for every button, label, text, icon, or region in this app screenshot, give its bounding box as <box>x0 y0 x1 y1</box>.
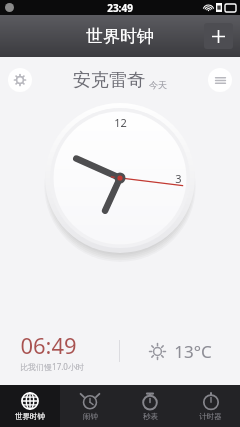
button[interactable]: 计时器 <box>180 385 240 427</box>
staticText: 闹钟 <box>83 412 98 421</box>
button[interactable]: Menu <box>208 68 232 92</box>
staticText: 13°C <box>174 340 212 363</box>
staticText: 计时器 <box>199 412 222 421</box>
staticText: 安克雷奇 <box>73 69 145 92</box>
staticText: 23:49 <box>107 1 133 15</box>
staticText: 比我们慢17.0小时 <box>20 361 84 372</box>
staticText: 12 <box>114 115 127 130</box>
button[interactable]: 闹钟 <box>60 385 120 427</box>
button[interactable]: 06:49 <box>0 325 240 377</box>
button[interactable]: 世界时钟 <box>0 385 60 427</box>
staticText: 世界时钟 <box>86 26 154 47</box>
button[interactable]: 秒表 <box>120 385 180 427</box>
staticText: 06:49 <box>20 330 77 360</box>
staticText: 世界时钟 <box>15 412 45 421</box>
staticText: 秒表 <box>143 412 158 421</box>
staticText: 今天 <box>149 79 167 90</box>
staticText: 3 <box>175 171 182 186</box>
button[interactable]: Add city <box>204 23 233 49</box>
button[interactable]: Settings <box>8 68 32 92</box>
